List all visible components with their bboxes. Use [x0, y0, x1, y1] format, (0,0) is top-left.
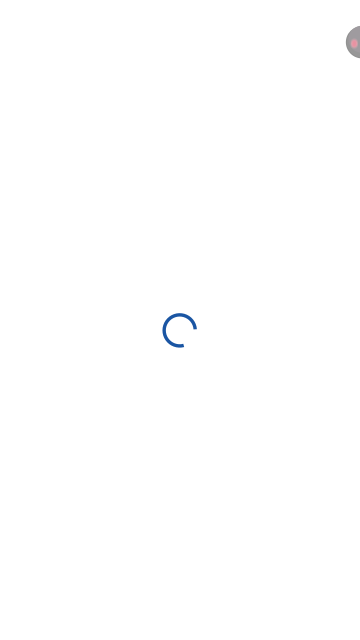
- button[interactable]: Account: [346, 26, 360, 58]
